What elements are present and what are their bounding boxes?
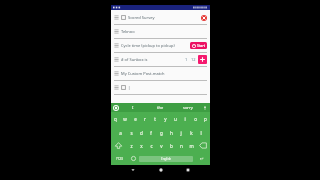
- staticText: r: [144, 116, 146, 122]
- button[interactable]: w: [120, 112, 130, 126]
- button[interactable]: Shift: [111, 139, 126, 152]
- button[interactable]: Reorder: [111, 25, 210, 39]
- button[interactable]: Reorder: [114, 71, 119, 76]
- button[interactable]: Space: [139, 156, 193, 162]
- staticText: I: [132, 105, 134, 110]
- button[interactable]: Gboard: [113, 105, 119, 111]
- button[interactable]: Reorder: [111, 39, 210, 53]
- button[interactable]: q: [111, 112, 120, 126]
- button[interactable]: Reorder: [114, 57, 119, 62]
- button[interactable]: Reorder: [114, 85, 119, 90]
- button[interactable]: p: [200, 112, 210, 126]
- button[interactable]: Start: [190, 42, 207, 49]
- button[interactable]: Reorder: [114, 43, 119, 48]
- button[interactable]: Backspace: [196, 139, 210, 152]
- staticText: q: [114, 116, 117, 122]
- button[interactable]: j: [176, 126, 186, 139]
- staticText: English: [161, 157, 172, 161]
- button[interactable]: k: [186, 126, 196, 139]
- button[interactable]: Reorder: [111, 53, 210, 67]
- button[interactable]: Voice input: [202, 105, 208, 111]
- staticText: 1: [185, 57, 188, 62]
- staticText: w: [123, 116, 127, 122]
- staticText: u: [174, 116, 177, 122]
- staticText: j: [180, 130, 182, 136]
- staticText: Scored Survey: [128, 15, 155, 20]
- button[interactable]: Enter: [193, 153, 209, 164]
- staticText: 12: [191, 57, 196, 62]
- staticText: o: [194, 116, 197, 122]
- staticText: n: [180, 143, 183, 149]
- button[interactable]: m: [186, 139, 196, 152]
- staticText: c: [150, 143, 153, 149]
- button[interactable]: y: [160, 112, 170, 126]
- button[interactable]: z: [126, 139, 136, 152]
- button[interactable]: e: [130, 112, 140, 126]
- button[interactable]: o: [190, 112, 200, 126]
- button[interactable]: Increase: [190, 56, 197, 63]
- staticText: y: [164, 116, 167, 122]
- button[interactable]: b: [166, 139, 176, 152]
- staticText: t: [154, 116, 156, 122]
- staticText: d: [140, 130, 143, 136]
- staticText: My Custom Post-match: [121, 71, 165, 76]
- staticText: l: [200, 130, 202, 136]
- button[interactable]: Recents: [183, 165, 193, 175]
- staticText: h: [170, 130, 173, 136]
- staticText: g: [160, 130, 163, 136]
- button[interactable]: Emoji: [127, 153, 139, 164]
- staticText: the: [157, 105, 164, 110]
- button[interactable]: Reorder: [114, 15, 119, 20]
- staticText: sorry: [183, 105, 193, 110]
- staticText: i: [184, 116, 186, 122]
- staticText: a: [119, 130, 122, 136]
- button[interactable]: Reorder: [111, 81, 210, 95]
- button[interactable]: d: [136, 126, 146, 139]
- button[interactable]: I: [119, 103, 146, 112]
- staticText: Teknoo: [121, 29, 135, 34]
- button[interactable]: Add: [198, 55, 207, 64]
- staticText: Cycle time (pickup to pickup): [121, 43, 175, 48]
- button[interactable]: Reorder: [114, 29, 119, 34]
- button[interactable]: f: [146, 126, 156, 139]
- button[interactable]: g: [156, 126, 166, 139]
- button[interactable]: Reorder: [111, 11, 210, 25]
- button[interactable]: Home: [156, 165, 166, 175]
- button[interactable]: c: [146, 139, 156, 152]
- staticText: ?123: [116, 157, 123, 161]
- button[interactable]: h: [166, 126, 176, 139]
- button[interactable]: r: [140, 112, 150, 126]
- button[interactable]: s: [126, 126, 136, 139]
- button[interactable]: Checkbox: [121, 85, 126, 90]
- button[interactable]: sorry: [174, 103, 202, 112]
- staticText: m: [189, 143, 194, 149]
- button[interactable]: Checkbox: [121, 15, 126, 20]
- button[interactable]: Delete: [201, 15, 207, 21]
- staticText: f: [150, 130, 152, 136]
- button[interactable]: t: [150, 112, 160, 126]
- button[interactable]: a: [115, 126, 126, 139]
- button[interactable]: v: [156, 139, 166, 152]
- button[interactable]: Back: [128, 165, 138, 175]
- staticText: # of Sunbox is: [121, 57, 148, 62]
- button[interactable]: x: [136, 139, 146, 152]
- button[interactable]: ?123: [112, 153, 127, 164]
- staticText: Start: [197, 43, 206, 48]
- staticText: k: [190, 130, 193, 136]
- button[interactable]: n: [176, 139, 186, 152]
- button[interactable]: u: [170, 112, 180, 126]
- staticText: x: [140, 143, 143, 149]
- staticText: p: [204, 116, 207, 122]
- staticText: z: [130, 143, 133, 149]
- staticText: s: [130, 130, 133, 136]
- staticText: |: [128, 85, 131, 90]
- button[interactable]: the: [146, 103, 174, 112]
- staticText: v: [160, 143, 163, 149]
- button[interactable]: Reorder: [111, 67, 210, 81]
- button[interactable]: l: [196, 126, 206, 139]
- button[interactable]: Decrease: [183, 56, 190, 63]
- staticText: e: [134, 116, 137, 122]
- button[interactable]: i: [180, 112, 190, 126]
- staticText: b: [170, 143, 173, 149]
